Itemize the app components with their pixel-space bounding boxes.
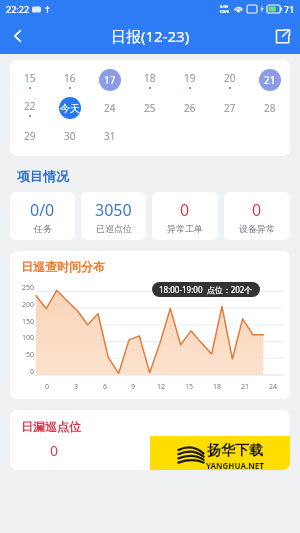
- staticText: 29: [24, 129, 36, 143]
- button[interactable]: 20: [210, 66, 250, 94]
- staticText: 0/0: [30, 199, 55, 221]
- staticText: 0: [180, 199, 190, 221]
- staticText: 21: [241, 382, 250, 392]
- staticText: 150: [21, 317, 34, 327]
- button[interactable]: 18: [130, 66, 170, 94]
- button[interactable]: 26: [170, 94, 210, 122]
- staticText: 18: [144, 71, 156, 85]
- button[interactable]: 28: [250, 94, 290, 122]
- staticText: 31: [104, 129, 116, 143]
- staticText: 27: [224, 101, 236, 115]
- staticText: 日巡查时间分布: [21, 259, 105, 274]
- staticText: 15: [185, 382, 194, 392]
- staticText: 71: [284, 3, 295, 15]
- button[interactable]: 19: [170, 66, 210, 94]
- staticText: 日漏巡点位: [21, 419, 81, 434]
- button[interactable]: 17: [90, 66, 130, 94]
- staticText: 17: [104, 73, 116, 87]
- button[interactable]: 27: [210, 94, 250, 122]
- staticText: 0: [45, 382, 50, 392]
- staticText: 26: [184, 101, 196, 115]
- staticText: 设备异常: [239, 223, 275, 234]
- button[interactable]: 31: [90, 122, 130, 150]
- staticText: 100: [21, 333, 34, 343]
- button[interactable]: 21: [250, 66, 290, 94]
- staticText: 24: [269, 382, 278, 392]
- staticText: 28: [264, 101, 276, 115]
- staticText: 21: [264, 73, 276, 87]
- button[interactable]: 0: [224, 192, 290, 240]
- staticText: 20: [224, 71, 236, 85]
- staticText: 异常工单: [167, 223, 203, 234]
- staticText: 250: [21, 283, 34, 293]
- staticText: 0: [50, 441, 59, 460]
- staticText: 项目情况: [17, 168, 69, 184]
- button[interactable]: 今天: [50, 94, 90, 122]
- staticText: 24: [104, 101, 116, 115]
- staticText: 19: [184, 71, 196, 85]
- button[interactable]: 15: [10, 66, 50, 94]
- staticText: 今天: [60, 102, 80, 115]
- staticText: 22: [24, 99, 36, 113]
- button[interactable]: 16: [50, 66, 90, 94]
- staticText: 9: [131, 382, 136, 392]
- staticText: 扬华下载: [207, 442, 263, 460]
- staticText: 6: [103, 382, 108, 392]
- staticText: 0: [29, 367, 34, 377]
- staticText: 已巡点位: [96, 223, 132, 234]
- staticText: 3: [74, 382, 79, 392]
- staticText: 16: [64, 71, 76, 85]
- button[interactable]: 0/0: [10, 192, 75, 240]
- staticText: 200: [21, 300, 34, 310]
- staticText: 0: [252, 199, 262, 221]
- button[interactable]: 24: [90, 94, 130, 122]
- staticText: 0.09 KB/S: [220, 4, 230, 14]
- button[interactable]: 0: [152, 192, 218, 240]
- staticText: 22:22: [6, 3, 30, 15]
- staticText: YANGHUA.NET: [206, 460, 264, 470]
- staticText: 日报(12-23): [111, 26, 190, 46]
- staticText: 30: [64, 129, 76, 143]
- staticText: 15: [24, 71, 36, 85]
- staticText: 12: [157, 382, 166, 392]
- button[interactable]: 29: [10, 122, 50, 150]
- staticText: 50: [25, 350, 34, 360]
- staticText: 18: [213, 382, 222, 392]
- staticText: 18:00-19:00 点位：202个: [159, 284, 253, 295]
- staticText: 任务: [34, 223, 52, 234]
- button[interactable]: 30: [50, 122, 90, 150]
- button[interactable]: 22: [10, 94, 50, 122]
- button[interactable]: Back: [0, 18, 36, 54]
- staticText: 25: [144, 101, 156, 115]
- button[interactable]: 3050: [81, 192, 146, 240]
- button[interactable]: Share: [264, 18, 300, 54]
- staticText: 3050: [95, 199, 132, 221]
- button[interactable]: 25: [130, 94, 170, 122]
